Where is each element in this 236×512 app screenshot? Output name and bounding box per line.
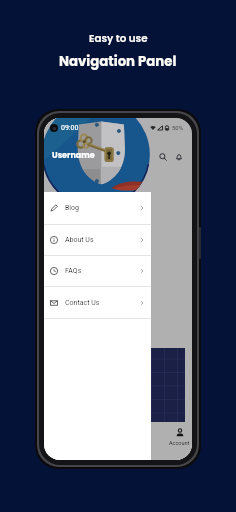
staticText: Easy to use [89,31,148,45]
button[interactable]: Blog [44,192,151,224]
button[interactable]: Notifications [171,149,187,165]
button[interactable]: Contact Us [44,287,151,318]
staticText: Username [52,150,95,161]
button[interactable]: FAQs [44,256,151,286]
button[interactable]: Search [155,149,171,165]
staticText: Account [169,440,190,446]
staticText: Blog [65,204,79,212]
staticText: Navigation Panel [59,52,177,71]
staticText: Contact Us [65,299,100,307]
staticText: About Us [65,236,94,244]
button[interactable]: About Us [44,225,151,255]
staticText: 50% [172,124,184,131]
staticText: 09:00 [61,124,79,132]
button[interactable]: Account [165,427,192,447]
staticText: FAQs [65,267,82,275]
